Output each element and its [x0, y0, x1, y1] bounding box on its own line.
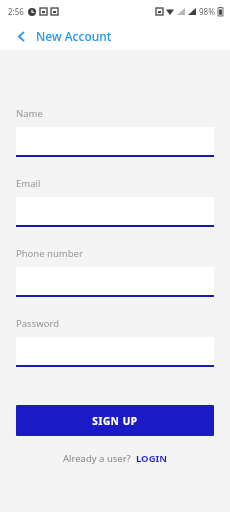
button[interactable] [16, 267, 214, 297]
button[interactable]: Back [10, 25, 32, 47]
staticText: SIGN UP [92, 414, 138, 428]
button[interactable]: SIGN UP [16, 405, 214, 436]
button[interactable] [16, 337, 214, 367]
staticText: Phone number [16, 247, 83, 260]
staticText: Email [16, 177, 41, 190]
button[interactable] [16, 197, 214, 227]
staticText: Password [16, 317, 59, 330]
staticText: New Account [36, 28, 112, 44]
staticText: Already a user? [63, 452, 131, 465]
staticText: 2:56 [8, 6, 24, 17]
button[interactable] [16, 127, 214, 157]
button[interactable]: LOGIN [136, 452, 167, 465]
staticText: LOGIN [136, 452, 167, 465]
staticText: Name [16, 107, 43, 120]
staticText: 98% [199, 6, 215, 17]
